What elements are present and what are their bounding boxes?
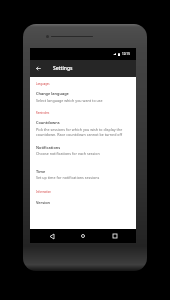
- button[interactable]: Home: [73, 229, 93, 243]
- staticText: 12:15: [122, 52, 130, 56]
- staticText: Change language: [36, 91, 69, 96]
- staticText: Notifications: [36, 145, 61, 150]
- staticText: Reminders: [36, 111, 50, 115]
- button[interactable]: Change language: [30, 86, 136, 103]
- button[interactable]: Back: [30, 60, 46, 77]
- button[interactable]: Recent apps: [105, 229, 125, 243]
- staticText: Pick the sessions for which you wish to …: [36, 127, 134, 137]
- staticText: Languages: [36, 82, 50, 86]
- button[interactable]: Notifications: [30, 137, 136, 156]
- staticText: Choose notifications for each session: [36, 151, 100, 156]
- staticText: Version: [36, 200, 51, 205]
- button[interactable]: Time: [30, 156, 136, 180]
- staticText: Set up time for notifications sessions: [36, 175, 100, 180]
- button[interactable]: Countdowns: [30, 115, 136, 137]
- staticText: Select language which you want to use: [36, 98, 103, 103]
- staticText: Settings: [53, 65, 73, 72]
- staticText: Time: [36, 169, 46, 174]
- staticText: Information: [36, 190, 51, 194]
- button[interactable]: Version: [30, 194, 136, 205]
- staticText: Countdowns: [36, 120, 60, 125]
- button[interactable]: Back: [42, 229, 62, 243]
